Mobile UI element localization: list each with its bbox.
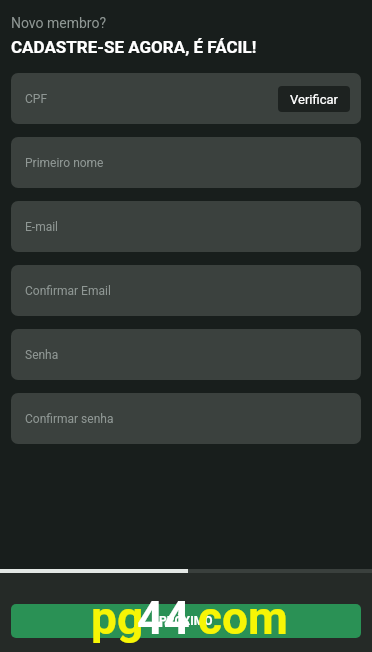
button[interactable]: E-mail bbox=[11, 201, 361, 252]
button[interactable]: Confirmar Email bbox=[11, 265, 361, 316]
staticText: Novo membro? bbox=[11, 15, 107, 31]
staticText: Senha bbox=[25, 348, 59, 362]
staticText: Verificar bbox=[290, 92, 338, 107]
staticText: CPF bbox=[25, 92, 48, 106]
staticText: Confirmar Email bbox=[25, 284, 111, 298]
staticText: PRÓXIMO bbox=[159, 614, 213, 628]
staticText: E-mail bbox=[25, 220, 59, 234]
staticText: CADASTRE-SE AGORA, É FÁCIL! bbox=[11, 37, 257, 57]
staticText: Confirmar senha bbox=[25, 412, 114, 426]
staticText: 44 bbox=[137, 591, 190, 645]
staticText: pg bbox=[91, 591, 144, 645]
button[interactable]: Senha bbox=[11, 329, 361, 380]
button[interactable]: Confirmar senha bbox=[11, 393, 361, 444]
button[interactable]: Verificar bbox=[278, 86, 350, 112]
button[interactable]: Primeiro nome bbox=[11, 137, 361, 188]
staticText: com bbox=[198, 591, 288, 645]
button[interactable]: CPF bbox=[11, 73, 361, 124]
staticText: Primeiro nome bbox=[25, 156, 104, 170]
button[interactable]: PRÓXIMO bbox=[11, 604, 361, 638]
